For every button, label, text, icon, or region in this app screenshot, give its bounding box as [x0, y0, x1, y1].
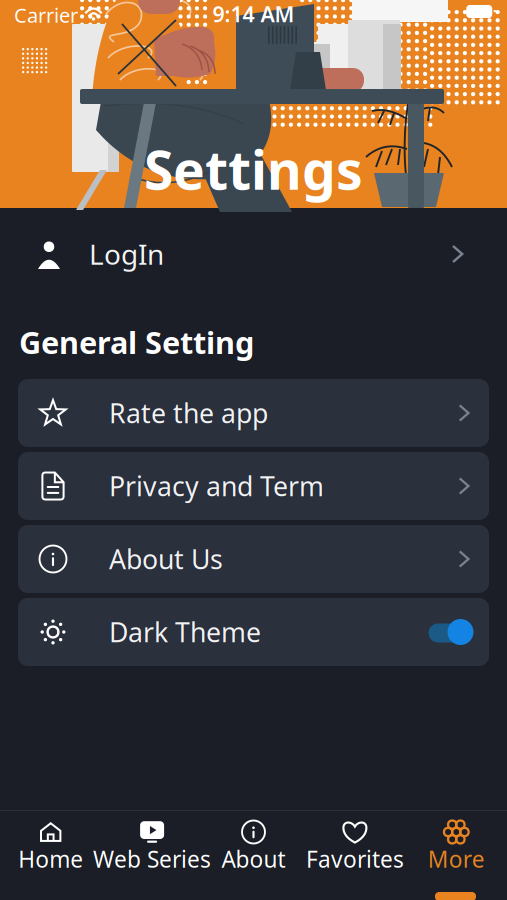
- button[interactable]: More: [376, 820, 507, 882]
- staticText: About Us: [109, 541, 223, 577]
- staticText: Rate the app: [109, 395, 268, 431]
- button[interactable]: Rate the app: [18, 379, 489, 447]
- button[interactable]: Home: [0, 820, 131, 882]
- staticText: More: [428, 844, 485, 874]
- button[interactable]: Favorites: [275, 820, 435, 882]
- staticText: 9:14 AM: [212, 0, 294, 28]
- button[interactable]: Privacy and Term: [18, 452, 489, 520]
- staticText: Privacy and Term: [109, 468, 324, 504]
- button[interactable]: Dark Theme: [18, 598, 489, 666]
- staticText: Dark Theme: [109, 614, 261, 650]
- button[interactable]: About: [173, 820, 333, 882]
- staticText: Carrier: [14, 2, 78, 28]
- staticText: Favorites: [306, 844, 404, 874]
- staticText: Home: [18, 844, 83, 874]
- staticText: General Setting: [19, 322, 254, 362]
- staticText: Web Series: [93, 844, 211, 874]
- button[interactable]: LogIn: [0, 224, 507, 284]
- button[interactable]: Web Series: [72, 820, 232, 882]
- staticText: LogIn: [89, 235, 164, 273]
- button[interactable]: About Us: [18, 525, 489, 593]
- staticText: Settings: [144, 134, 363, 204]
- staticText: About: [221, 844, 285, 874]
